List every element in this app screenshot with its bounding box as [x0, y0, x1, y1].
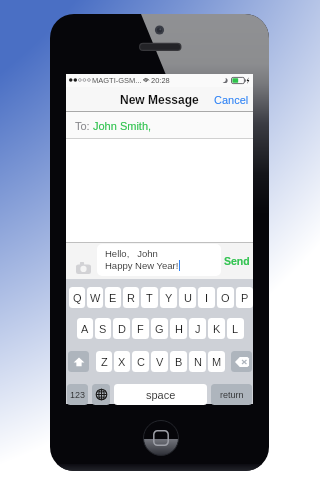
- button[interactable]: D: [113, 318, 130, 339]
- button[interactable]: S: [95, 318, 111, 339]
- staticText: 20:28: [151, 76, 170, 84]
- button[interactable]: U: [179, 287, 196, 308]
- button[interactable]: L: [227, 318, 244, 339]
- button[interactable]: Backspace: [231, 351, 252, 372]
- staticText: F: [137, 323, 144, 335]
- button[interactable]: A: [77, 318, 93, 339]
- staticText: Z: [101, 356, 108, 368]
- staticText: R: [127, 292, 135, 304]
- button[interactable]: K: [208, 318, 225, 339]
- staticText: MAGTI-GSM...: [92, 76, 142, 84]
- button[interactable]: X: [114, 351, 130, 372]
- staticText: 123: [70, 390, 86, 400]
- staticText: Happy New Year!: [105, 260, 179, 271]
- button[interactable]: M: [208, 351, 225, 372]
- button[interactable]: I: [198, 287, 215, 308]
- button[interactable]: Z: [96, 351, 112, 372]
- button[interactable]: H: [170, 318, 187, 339]
- staticText: Y: [165, 292, 173, 304]
- button[interactable]: E: [105, 287, 121, 308]
- button[interactable]: Cancel: [206, 89, 253, 111]
- staticText: L: [232, 323, 239, 335]
- button[interactable]: Q: [69, 287, 85, 308]
- button[interactable]: J: [189, 318, 206, 339]
- staticText: C: [137, 356, 145, 368]
- staticText: I: [205, 292, 209, 304]
- button[interactable]: O: [217, 287, 234, 308]
- button[interactable]: W: [87, 287, 103, 308]
- button[interactable]: G: [151, 318, 168, 339]
- staticText: space: [146, 389, 176, 401]
- button[interactable]: F: [132, 318, 149, 339]
- button[interactable]: return: [211, 384, 252, 405]
- staticText: Q: [73, 292, 82, 304]
- staticText: return: [220, 390, 244, 400]
- button[interactable]: R: [123, 287, 139, 308]
- staticText: Send: [224, 255, 250, 267]
- button[interactable]: N: [189, 351, 206, 372]
- staticText: V: [156, 356, 164, 368]
- staticText: E: [109, 292, 117, 304]
- staticText: Cancel: [214, 94, 249, 106]
- button[interactable]: Send: [219, 251, 253, 271]
- button[interactable]: V: [151, 351, 168, 372]
- button[interactable]: space: [114, 384, 207, 405]
- staticText: N: [194, 356, 202, 368]
- staticText: John Smith,: [93, 120, 152, 132]
- button[interactable]: Shift: [68, 351, 89, 372]
- button[interactable]: C: [132, 351, 149, 372]
- button[interactable]: T: [141, 287, 158, 308]
- button[interactable]: B: [170, 351, 187, 372]
- staticText: P: [241, 292, 249, 304]
- button[interactable]: Switch keyboard: [92, 384, 110, 405]
- staticText: S: [99, 323, 107, 335]
- staticText: X: [118, 356, 126, 368]
- staticText: G: [155, 323, 164, 335]
- button[interactable]: Camera: [75, 260, 91, 276]
- staticText: B: [175, 356, 183, 368]
- staticText: M: [212, 356, 222, 368]
- staticText: O: [221, 292, 230, 304]
- button[interactable]: 123: [67, 384, 88, 405]
- button[interactable]: P: [236, 287, 253, 308]
- staticText: Hello, John: [105, 248, 158, 259]
- staticText: D: [118, 323, 126, 335]
- staticText: H: [175, 323, 183, 335]
- button[interactable]: Y: [160, 287, 177, 308]
- button[interactable]: Hello, John: [97, 244, 221, 276]
- staticText: U: [184, 292, 192, 304]
- staticText: T: [146, 292, 153, 304]
- staticText: New Message: [120, 93, 199, 106]
- staticText: K: [213, 323, 221, 335]
- staticText: W: [90, 292, 101, 304]
- staticText: A: [81, 323, 89, 335]
- staticText: J: [195, 323, 201, 335]
- staticText: To:: [75, 120, 90, 132]
